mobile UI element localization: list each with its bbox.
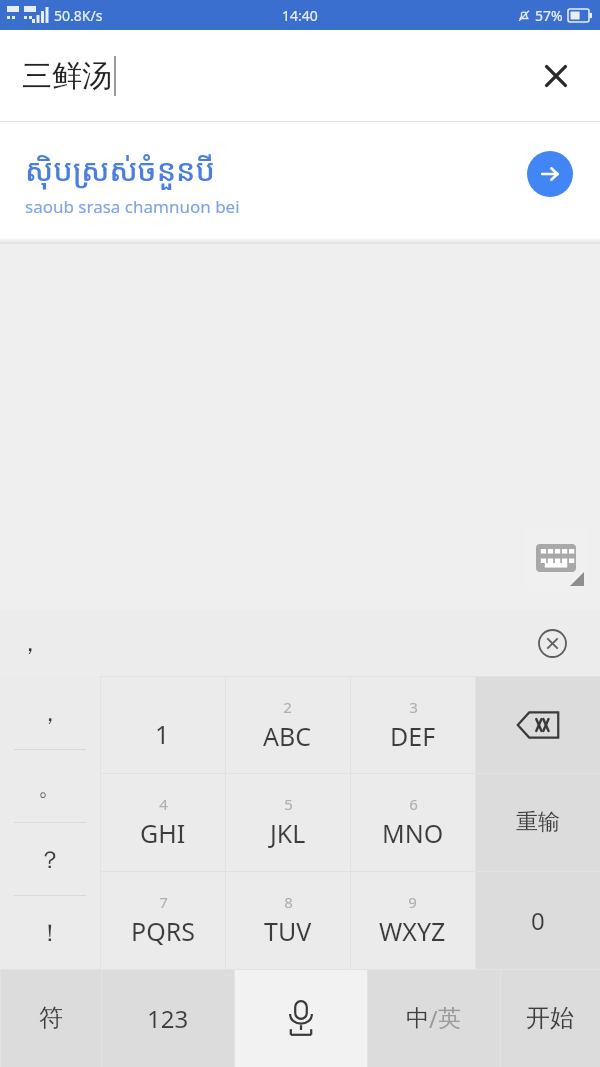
button[interactable]: Close keyboard <box>532 623 572 663</box>
staticText: 57% <box>535 6 563 25</box>
button[interactable]: 2 <box>225 676 350 773</box>
button[interactable]: 6 <box>350 773 475 871</box>
button[interactable]: 4 <box>100 773 225 871</box>
button[interactable]: ！ <box>0 896 100 969</box>
button[interactable]: ， <box>0 676 100 750</box>
staticText: 9 <box>408 892 417 912</box>
staticText: 。 <box>38 772 62 802</box>
button[interactable]: Keyboard layout <box>524 526 588 590</box>
staticText: 2 <box>283 697 292 717</box>
staticText: ABC <box>263 719 312 753</box>
staticText: DEF <box>390 719 436 753</box>
button[interactable]: 重输 <box>475 773 600 871</box>
button[interactable]: 开始 <box>500 969 600 1067</box>
button[interactable]: 5 <box>225 773 350 871</box>
button[interactable]: Translate <box>527 151 573 197</box>
staticText: 3 <box>409 697 418 717</box>
button[interactable]: សុិបស្រស់ចំនួនបី <box>0 122 600 244</box>
staticText: 符 <box>39 1003 63 1033</box>
button[interactable]: 3 <box>350 676 475 773</box>
staticText: 7 <box>159 892 168 912</box>
button[interactable]: 0 <box>475 871 600 969</box>
button[interactable]: Clear text <box>532 52 580 100</box>
button[interactable]: 1 <box>100 676 225 773</box>
staticText: 5 <box>284 794 293 814</box>
staticText: សុិបស្រស់ចំនួនបី <box>25 149 215 190</box>
staticText: saoub srasa chamnuon bei <box>25 195 240 218</box>
staticText: WXYZ <box>379 914 446 948</box>
staticText: MNO <box>382 816 444 850</box>
staticText: 英 <box>438 1004 461 1033</box>
staticText: 开始 <box>526 1003 574 1033</box>
staticText: 6 <box>409 794 418 814</box>
staticText: ， <box>38 698 62 728</box>
staticText: / <box>429 1003 438 1034</box>
staticText: TUV <box>264 914 312 948</box>
button[interactable]: Key <box>234 969 367 1067</box>
staticText: 1 <box>155 717 170 751</box>
staticText: 50.8K/s <box>54 6 103 25</box>
button[interactable]: 中 <box>367 969 500 1067</box>
staticText: PQRS <box>131 914 195 948</box>
button[interactable]: 123 <box>101 969 234 1067</box>
button[interactable]: 7 <box>100 871 225 969</box>
button[interactable]: 8 <box>225 871 350 969</box>
button[interactable]: 符 <box>0 969 101 1067</box>
staticText: GHI <box>140 816 186 850</box>
staticText: 0 <box>531 904 545 937</box>
staticText: 4 <box>159 794 168 814</box>
button[interactable]: Key <box>475 676 600 773</box>
button[interactable]: 9 <box>350 871 475 969</box>
staticText: 重输 <box>516 808 560 836</box>
staticText: 中 <box>406 1004 429 1033</box>
button[interactable]: 。 <box>0 750 100 823</box>
staticText: 123 <box>147 1002 189 1035</box>
staticText: 三鲜汤 <box>22 57 112 95</box>
staticText: 8 <box>284 892 293 912</box>
staticText: ？ <box>38 845 62 875</box>
staticText: JKL <box>270 816 306 850</box>
staticText: 14:40 <box>282 6 318 25</box>
staticText: ！ <box>38 918 62 948</box>
button[interactable]: ， <box>18 628 42 658</box>
button[interactable]: ？ <box>0 823 100 896</box>
